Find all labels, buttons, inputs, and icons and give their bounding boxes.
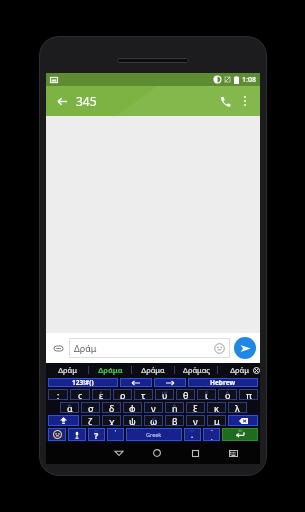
staticText: Hebrew (210, 378, 236, 387)
staticText: δ (109, 402, 115, 413)
staticText: ρ (120, 389, 126, 400)
button[interactable]: . (184, 428, 201, 441)
staticText: Δράμ (230, 365, 249, 375)
staticText: γ (151, 402, 156, 413)
button[interactable]: ξ (186, 402, 205, 413)
button[interactable] (154, 378, 186, 387)
button[interactable]: Δράμας (175, 363, 217, 377)
button[interactable]: ; (48, 389, 68, 400)
staticText: , (115, 436, 117, 441)
button[interactable]: ο (218, 389, 237, 400)
staticText: . (191, 429, 194, 440)
button[interactable]: β (165, 415, 184, 426)
staticText: ζ (88, 415, 93, 426)
staticText: ν (193, 415, 198, 426)
staticText: Δράμ (58, 365, 77, 375)
button[interactable]: ς (70, 389, 90, 400)
button[interactable]: ¨ (203, 428, 220, 441)
staticText: θ (183, 389, 189, 400)
staticText: φ (129, 402, 136, 413)
staticText: ? (94, 429, 99, 441)
button[interactable]: ζ (81, 415, 100, 426)
staticText: ¨ (210, 428, 214, 436)
button[interactable] (48, 428, 66, 441)
staticText: ξ (193, 402, 198, 413)
button[interactable]: Home (138, 442, 176, 464)
staticText: ; (57, 389, 60, 400)
staticText: ε (99, 389, 104, 400)
button[interactable] (68, 428, 86, 441)
staticText: 123!#() (72, 378, 94, 387)
button[interactable] (120, 378, 152, 387)
button[interactable]: λ (228, 402, 247, 413)
button[interactable]: Send (234, 337, 256, 359)
staticText: ή (173, 403, 176, 409)
button[interactable]: ι (197, 389, 216, 400)
button[interactable]: More options (236, 92, 254, 110)
button[interactable]: ' (107, 428, 124, 441)
button[interactable]: α (60, 402, 79, 413)
button[interactable]: Hebrew (188, 378, 258, 387)
button[interactable]: θ (176, 389, 195, 400)
button[interactable]: Attach (50, 340, 66, 356)
button[interactable]: γ (144, 402, 163, 413)
button[interactable]: Δράμα (89, 363, 131, 377)
staticText: ο (225, 389, 231, 400)
button[interactable]: Call (214, 90, 236, 112)
button[interactable]: ε (92, 389, 111, 400)
staticText: Δράμ (74, 342, 97, 354)
button[interactable]: σ (81, 402, 100, 413)
staticText: ι (205, 389, 208, 400)
staticText: Δράμα (141, 365, 165, 375)
staticText: ϊί (205, 390, 208, 396)
button[interactable]: Δράμ (218, 363, 260, 377)
staticText: έ (100, 390, 103, 396)
button[interactable]: κ (207, 402, 226, 413)
button[interactable]: χ (102, 415, 121, 426)
staticText: 345 (76, 93, 97, 109)
button[interactable]: Δράμα (132, 363, 174, 377)
button[interactable]: π (239, 389, 258, 400)
staticText: β (172, 415, 178, 426)
staticText: ς (78, 389, 83, 400)
staticText: <> (190, 428, 195, 433)
staticText: υ (162, 389, 168, 400)
button[interactable]: ρ (113, 389, 132, 400)
staticText: μ (214, 415, 220, 426)
staticText: τ (141, 389, 146, 400)
button[interactable]: Switch keyboard (214, 442, 252, 464)
staticText: ψ (129, 415, 136, 426)
button[interactable] (228, 415, 258, 426)
button[interactable]: Δράμ (46, 363, 88, 377)
button[interactable]: Recents (176, 442, 214, 464)
staticText: κ (214, 402, 219, 413)
button[interactable]: μ (207, 415, 226, 426)
button[interactable]: δ (102, 402, 121, 413)
button[interactable]: ω (144, 415, 163, 426)
button[interactable]: ψ (123, 415, 142, 426)
button[interactable]: φ (123, 402, 142, 413)
staticText: χ (109, 415, 115, 426)
staticText: α (67, 402, 73, 413)
staticText: η (172, 402, 178, 413)
button[interactable]: υ (155, 389, 174, 400)
button[interactable]: Δράμ (69, 338, 230, 358)
staticText: <> (238, 428, 243, 433)
button[interactable]: ν (186, 415, 205, 426)
button[interactable] (48, 415, 79, 426)
button[interactable]: <> (222, 428, 258, 441)
staticText: σ (88, 402, 94, 413)
staticText: <> (94, 428, 99, 433)
button[interactable]: ? (88, 428, 105, 441)
button[interactable]: Back (100, 442, 138, 464)
button[interactable]: τ (134, 389, 153, 400)
staticText: ώ (152, 416, 156, 422)
staticText: ' (115, 428, 117, 436)
button[interactable]: Back (52, 91, 72, 111)
button[interactable]: η (165, 402, 184, 413)
staticText: 1:08 (242, 75, 256, 85)
button[interactable]: Greek (126, 428, 182, 441)
button[interactable]: 123!#() (48, 378, 118, 387)
staticText: Δράμας (183, 365, 210, 375)
staticText: π (246, 389, 252, 400)
